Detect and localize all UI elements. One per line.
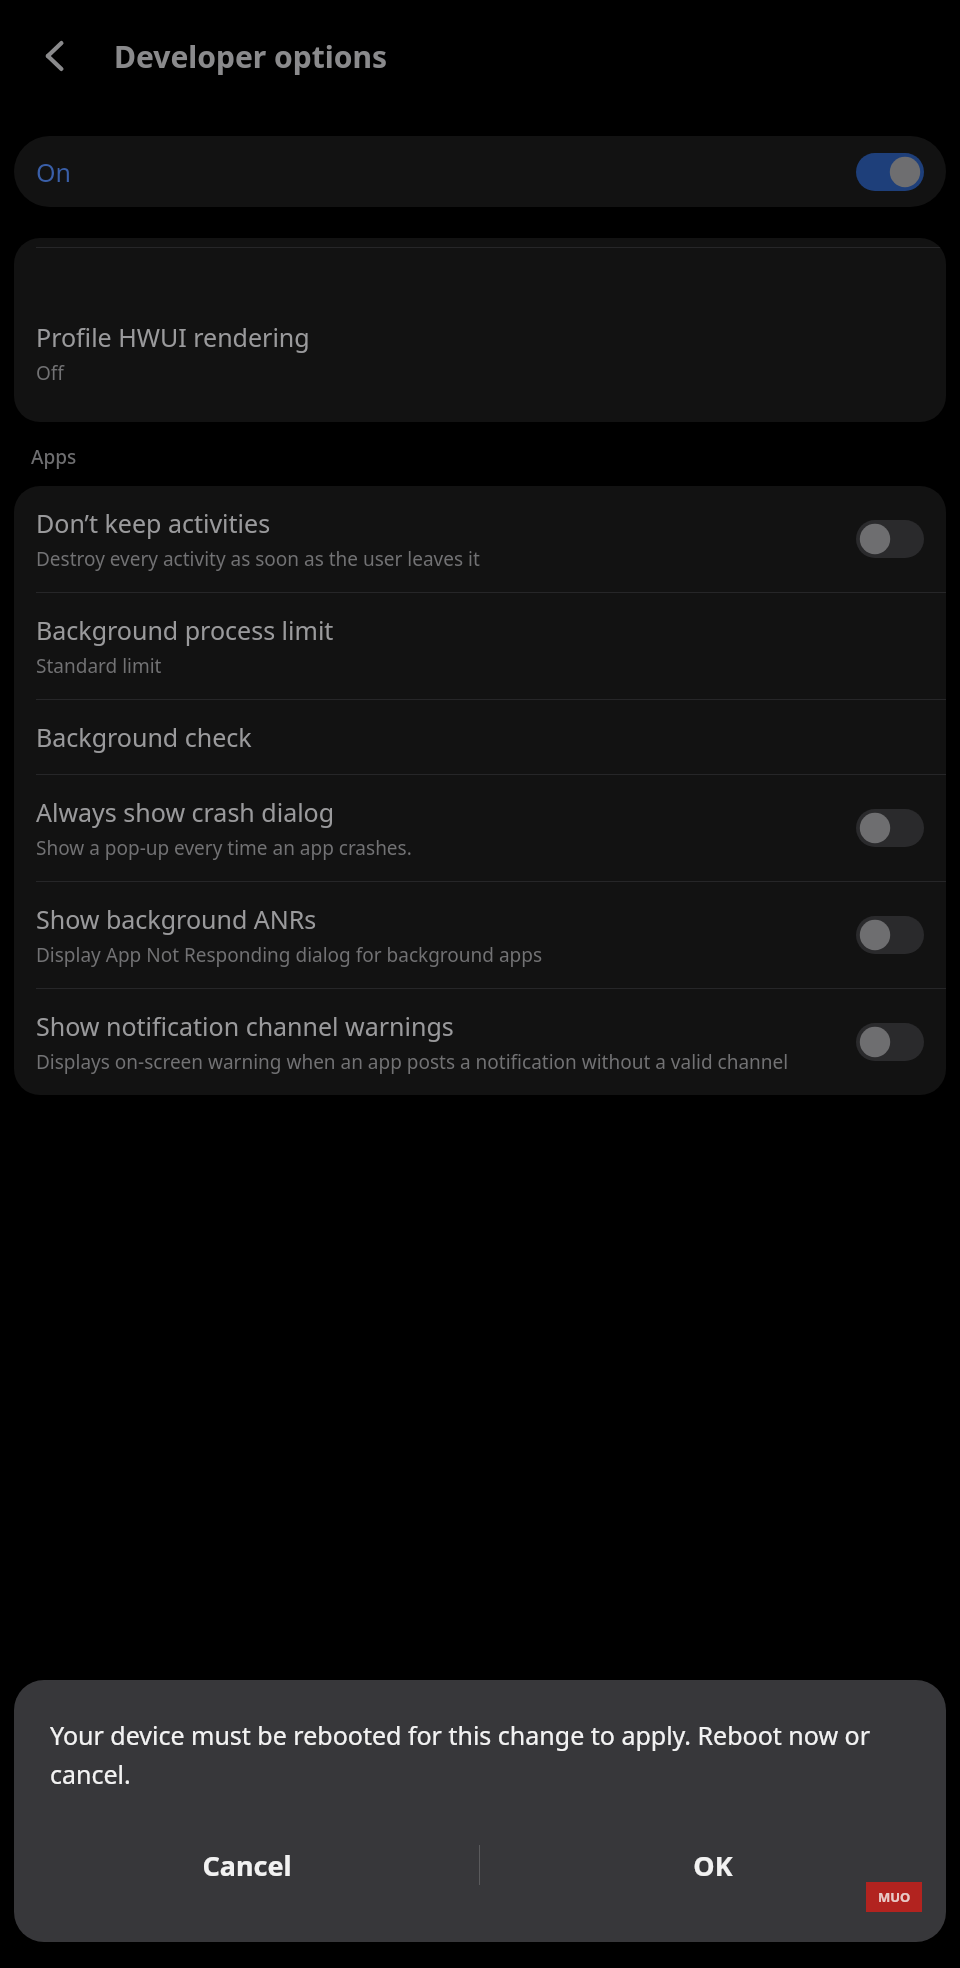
button[interactable]: Show notification channel warnings	[14, 989, 946, 1095]
staticText: MUO	[878, 1888, 911, 1906]
staticText: Cancel	[202, 1847, 292, 1884]
button[interactable]: OK	[480, 1822, 946, 1908]
staticText: Background check	[36, 720, 252, 754]
button[interactable]: Don’t keep activities	[14, 486, 946, 592]
button[interactable]: Toggle off	[856, 1023, 924, 1061]
staticText: Destroy every activity as soon as the us…	[36, 546, 480, 572]
staticText: Show background ANRs	[36, 902, 317, 936]
staticText: Background process limit	[36, 613, 334, 647]
staticText: Your device must be rebooted for this ch…	[50, 1718, 910, 1792]
staticText: Display App Not Responding dialog for ba…	[36, 942, 543, 968]
staticText: Displays on-screen warning when an app p…	[36, 1049, 789, 1075]
staticText: Don’t keep activities	[36, 506, 271, 540]
button[interactable]: On	[14, 136, 946, 207]
staticText: OK	[693, 1847, 733, 1884]
button[interactable]: Toggle on	[856, 153, 924, 191]
button[interactable]: Background check	[14, 700, 946, 774]
button[interactable]: Always show crash dialog	[14, 775, 946, 881]
button[interactable]: Show background ANRs	[14, 882, 946, 988]
button[interactable]: Cancel	[14, 1822, 479, 1908]
staticText: Standard limit	[36, 653, 162, 679]
staticText: Show notification channel warnings	[36, 1009, 454, 1043]
staticText: Developer options	[114, 36, 388, 77]
button[interactable]: Back	[20, 20, 92, 92]
button[interactable]: Background process limit	[14, 593, 946, 699]
button[interactable]: Profile HWUI rendering	[14, 320, 946, 408]
button[interactable]: Toggle off	[856, 916, 924, 954]
staticText: Off	[36, 360, 64, 386]
button[interactable]: Toggle off	[856, 520, 924, 558]
staticText: Always show crash dialog	[36, 795, 335, 829]
button[interactable]: Toggle off	[856, 809, 924, 847]
staticText: Show a pop-up every time an app crashes.	[36, 835, 412, 861]
staticText: Apps	[31, 444, 77, 470]
staticText: Profile HWUI rendering	[36, 320, 310, 354]
staticText: On	[36, 155, 71, 189]
